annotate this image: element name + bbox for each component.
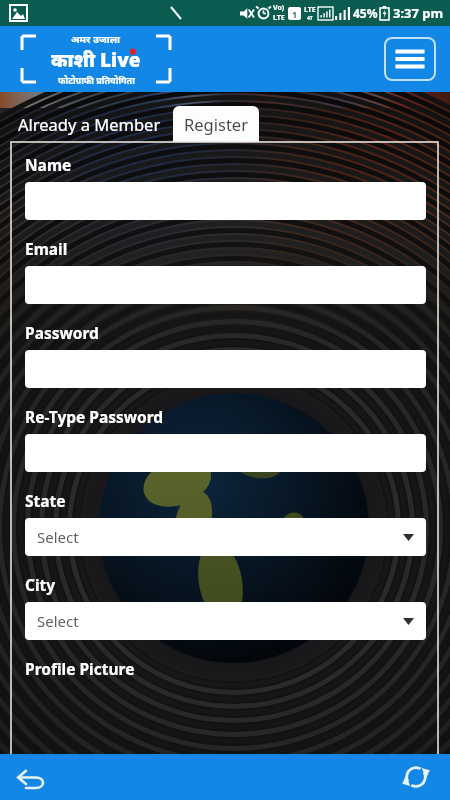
button[interactable] — [25, 182, 426, 220]
staticText: Name — [25, 154, 72, 175]
button[interactable]: Already a Member — [16, 106, 163, 142]
button[interactable] — [25, 266, 426, 304]
staticText: Password — [25, 322, 99, 343]
button[interactable]: Menu — [384, 37, 436, 81]
staticText: Already a Member — [18, 113, 161, 135]
staticText: State — [25, 490, 66, 511]
staticText: Live — [100, 47, 141, 73]
staticText: अमर उजाला — [71, 32, 121, 46]
button[interactable]: Refresh — [396, 757, 436, 797]
button[interactable]: Back — [12, 757, 52, 797]
staticText: LTE — [273, 13, 285, 23]
button[interactable]: Register — [173, 106, 259, 142]
button[interactable]: Select — [25, 518, 426, 556]
staticText: City — [25, 574, 56, 595]
staticText: Vo) — [273, 3, 285, 13]
staticText: 45% — [353, 5, 378, 21]
button[interactable]: Select — [25, 602, 426, 640]
staticText: फोटोग्राफी प्रतियोगिता — [58, 74, 135, 86]
staticText: 3:37 pm — [393, 4, 444, 22]
staticText: काशी — [51, 47, 100, 73]
staticText: Select — [37, 611, 79, 631]
button[interactable]: Amar Ujala Kashi Live logo — [14, 31, 178, 87]
staticText: Email — [25, 238, 68, 259]
button[interactable] — [25, 434, 426, 472]
staticText: LTE — [304, 5, 316, 15]
button[interactable] — [25, 350, 426, 388]
staticText: Select — [37, 527, 79, 547]
staticText: Profile Picture — [25, 658, 135, 679]
staticText: 1 — [292, 8, 298, 20]
staticText: Register — [184, 113, 248, 135]
staticText: 4T — [307, 15, 313, 22]
staticText: Re-Type Password — [25, 406, 164, 427]
